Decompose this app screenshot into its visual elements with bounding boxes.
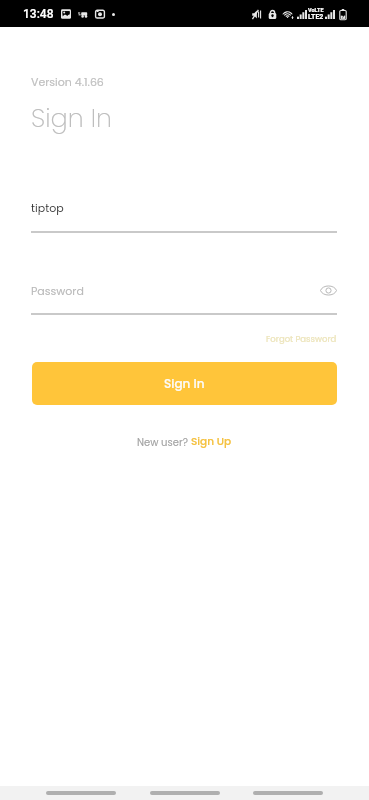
button[interactable]: Sign In: [32, 362, 337, 405]
staticText: Forgot Password: [266, 333, 337, 345]
staticText: tiptop: [31, 200, 64, 215]
staticText: Password: [31, 283, 84, 297]
staticText: VoLTE: [308, 7, 324, 13]
button[interactable]: Username field: [31, 200, 337, 233]
staticText: LTE2: [308, 13, 324, 21]
button[interactable]: Show password: [319, 283, 337, 297]
staticText: Sign In: [31, 100, 112, 136]
staticText: Sign In: [164, 375, 205, 392]
button[interactable]: Back: [46, 786, 116, 800]
staticText: 13:48: [23, 7, 54, 21]
button[interactable]: Recent apps: [253, 786, 323, 800]
button[interactable]: Sign Up: [191, 434, 232, 449]
button[interactable]: Forgot Password: [266, 333, 337, 345]
staticText: Version 4.1.66: [31, 74, 104, 89]
button[interactable]: Password field: [31, 283, 337, 297]
staticText: New user?: [137, 435, 191, 449]
button[interactable]: Home: [150, 786, 220, 800]
